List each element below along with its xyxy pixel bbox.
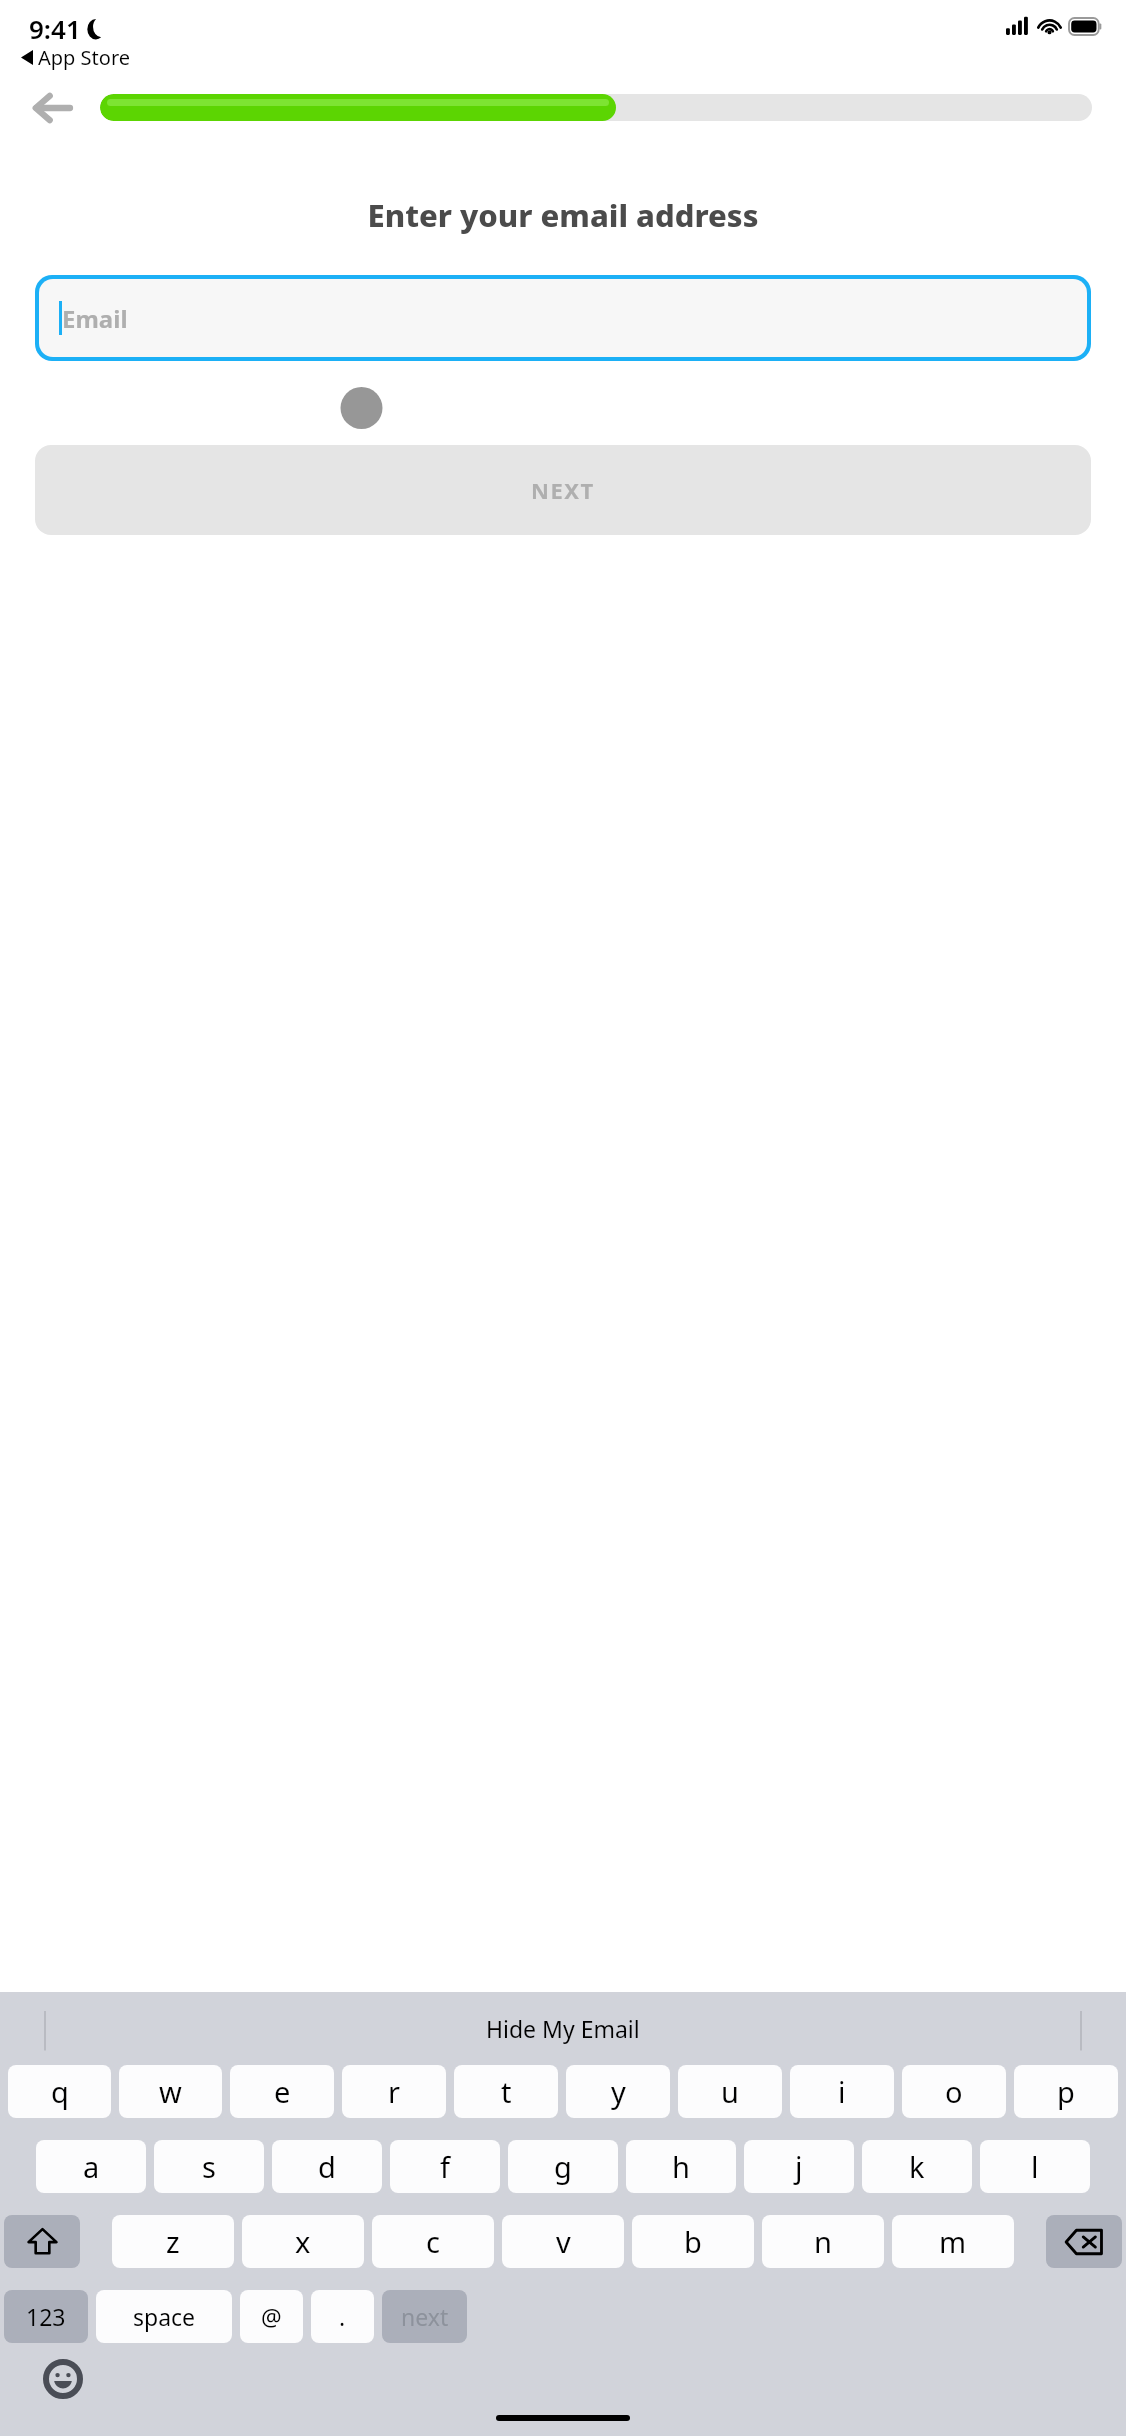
button[interactable]: Backspace — [1046, 2215, 1122, 2268]
staticText: a — [83, 2147, 100, 2186]
staticText: 9:41 — [29, 11, 81, 46]
staticText: p — [1057, 2072, 1075, 2111]
button[interactable]: o — [902, 2065, 1006, 2118]
staticText: x — [295, 2222, 311, 2261]
button[interactable]: b — [632, 2215, 754, 2268]
staticText: y — [611, 2072, 626, 2111]
button[interactable]: v — [502, 2215, 624, 2268]
button[interactable]: g — [508, 2140, 618, 2193]
staticText: 123 — [26, 2301, 66, 2332]
staticText: j — [795, 2147, 803, 2186]
button[interactable]: @ — [240, 2290, 303, 2343]
staticText: Email — [62, 302, 128, 335]
staticText: Enter your email address — [0, 194, 1126, 236]
staticText: . — [339, 2301, 346, 2332]
staticText: o — [945, 2072, 963, 2111]
staticText: NEXT — [531, 475, 595, 505]
staticText: i — [838, 2072, 846, 2111]
staticText: @ — [261, 2301, 282, 2332]
staticText: space — [133, 2301, 196, 2332]
staticText: m — [939, 2222, 967, 2261]
button[interactable]: h — [626, 2140, 736, 2193]
staticText: k — [909, 2147, 925, 2186]
staticText: w — [159, 2072, 182, 2111]
button[interactable]: t — [454, 2065, 558, 2118]
button[interactable]: 123 — [4, 2290, 88, 2343]
button[interactable]: k — [862, 2140, 972, 2193]
staticText: d — [318, 2147, 336, 2186]
button[interactable]: u — [678, 2065, 782, 2118]
staticText: g — [554, 2147, 572, 2186]
button[interactable]: space — [96, 2290, 232, 2343]
staticText: z — [166, 2222, 180, 2261]
button[interactable]: m — [892, 2215, 1014, 2268]
button[interactable]: n — [762, 2215, 884, 2268]
button[interactable]: a — [36, 2140, 146, 2193]
button[interactable]: d — [272, 2140, 382, 2193]
button[interactable]: Hide My Email — [486, 2013, 640, 2044]
button[interactable]: e — [230, 2065, 334, 2118]
staticText: Hide My Email — [486, 2013, 640, 2044]
button[interactable]: Email — [35, 275, 1091, 361]
staticText: h — [672, 2147, 690, 2186]
staticText: s — [202, 2147, 216, 2186]
button[interactable]: Emoji keyboard — [43, 2359, 83, 2399]
button[interactable]: p — [1014, 2065, 1118, 2118]
button[interactable]: i — [790, 2065, 894, 2118]
staticText: r — [388, 2072, 400, 2111]
button[interactable]: f — [390, 2140, 500, 2193]
button[interactable]: s — [154, 2140, 264, 2193]
button[interactable]: z — [112, 2215, 234, 2268]
button[interactable]: y — [566, 2065, 670, 2118]
button[interactable]: w — [119, 2065, 222, 2118]
staticText: c — [426, 2222, 440, 2261]
button[interactable]: next — [382, 2290, 467, 2343]
button[interactable]: Shift — [4, 2215, 80, 2268]
staticText: n — [814, 2222, 832, 2261]
button[interactable]: x — [242, 2215, 364, 2268]
button[interactable]: l — [980, 2140, 1090, 2193]
staticText: u — [721, 2072, 739, 2111]
staticText: f — [440, 2147, 450, 2186]
button[interactable]: j — [744, 2140, 854, 2193]
staticText: next — [401, 2301, 449, 2332]
staticText: q — [51, 2072, 69, 2111]
button[interactable]: c — [372, 2215, 494, 2268]
staticText: l — [1031, 2147, 1039, 2186]
button[interactable]: q — [8, 2065, 111, 2118]
button[interactable]: Back — [26, 84, 74, 132]
staticText: e — [274, 2072, 291, 2111]
button[interactable]: r — [342, 2065, 446, 2118]
staticText: App Store — [38, 44, 131, 71]
button[interactable]: . — [311, 2290, 374, 2343]
staticText: b — [684, 2222, 702, 2261]
staticText: v — [556, 2222, 571, 2261]
button[interactable]: NEXT — [35, 445, 1091, 535]
staticText: t — [501, 2072, 512, 2111]
